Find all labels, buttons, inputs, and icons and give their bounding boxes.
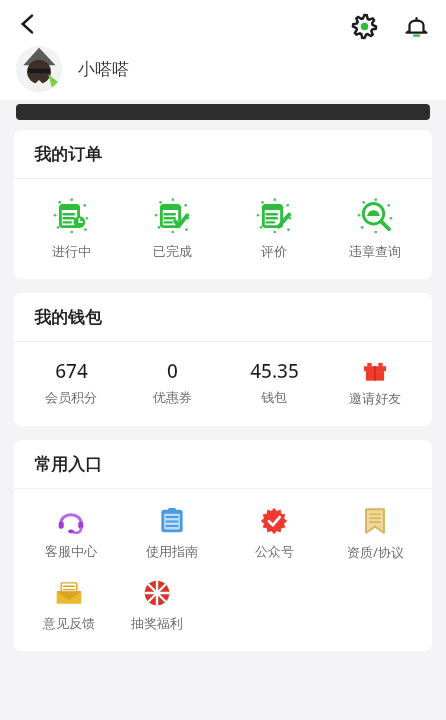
button[interactable]: 进行中 xyxy=(27,197,115,259)
button[interactable]: 使用指南 xyxy=(128,507,216,559)
button[interactable]: 客服中心 xyxy=(27,507,115,559)
staticText: 公众号 xyxy=(255,543,294,559)
staticText: 45.35 xyxy=(250,358,299,384)
staticText: 优惠券 xyxy=(153,389,192,405)
staticText: 抽奖福利 xyxy=(131,615,183,631)
staticText: 评价 xyxy=(261,243,287,259)
staticText: 钱包 xyxy=(261,389,287,405)
staticText: 资质/协议 xyxy=(347,543,404,561)
button[interactable]: 资质/协议 xyxy=(331,507,419,561)
staticText: 我的钱包 xyxy=(34,307,102,328)
staticText: 违章查询 xyxy=(349,243,401,259)
staticText: 进行中 xyxy=(52,243,91,259)
button[interactable]: 45.35 xyxy=(230,358,318,405)
staticText: 邀请好友 xyxy=(349,390,401,406)
button[interactable]: 674 xyxy=(27,358,115,405)
staticText: 已完成 xyxy=(153,243,192,259)
staticText: 0 xyxy=(167,358,178,384)
button[interactable]: 意见反馈 xyxy=(25,579,113,631)
staticText: 小嗒嗒 xyxy=(78,59,129,80)
staticText: 使用指南 xyxy=(146,543,198,559)
button[interactable]: Back xyxy=(6,2,50,46)
button[interactable]: 已完成 xyxy=(128,197,216,259)
button[interactable]: 0 xyxy=(128,358,216,405)
button[interactable]: 违章查询 xyxy=(331,197,419,259)
button[interactable]: 公众号 xyxy=(230,507,318,559)
button[interactable]: 抽奖福利 xyxy=(113,579,201,631)
staticText: 会员积分 xyxy=(45,389,97,405)
button[interactable]: Notifications xyxy=(396,6,436,46)
button[interactable]: Banner xyxy=(16,104,430,120)
staticText: 常用入口 xyxy=(34,454,102,475)
button[interactable]: Settings xyxy=(344,6,384,46)
staticText: 674 xyxy=(55,358,88,384)
button[interactable]: 邀请好友 xyxy=(331,358,419,406)
staticText: 客服中心 xyxy=(45,543,97,559)
button[interactable]: 评价 xyxy=(230,197,318,259)
staticText: 意见反馈 xyxy=(43,615,95,631)
button[interactable]: 小嗒嗒 xyxy=(16,46,129,92)
staticText: 我的订单 xyxy=(34,144,102,165)
